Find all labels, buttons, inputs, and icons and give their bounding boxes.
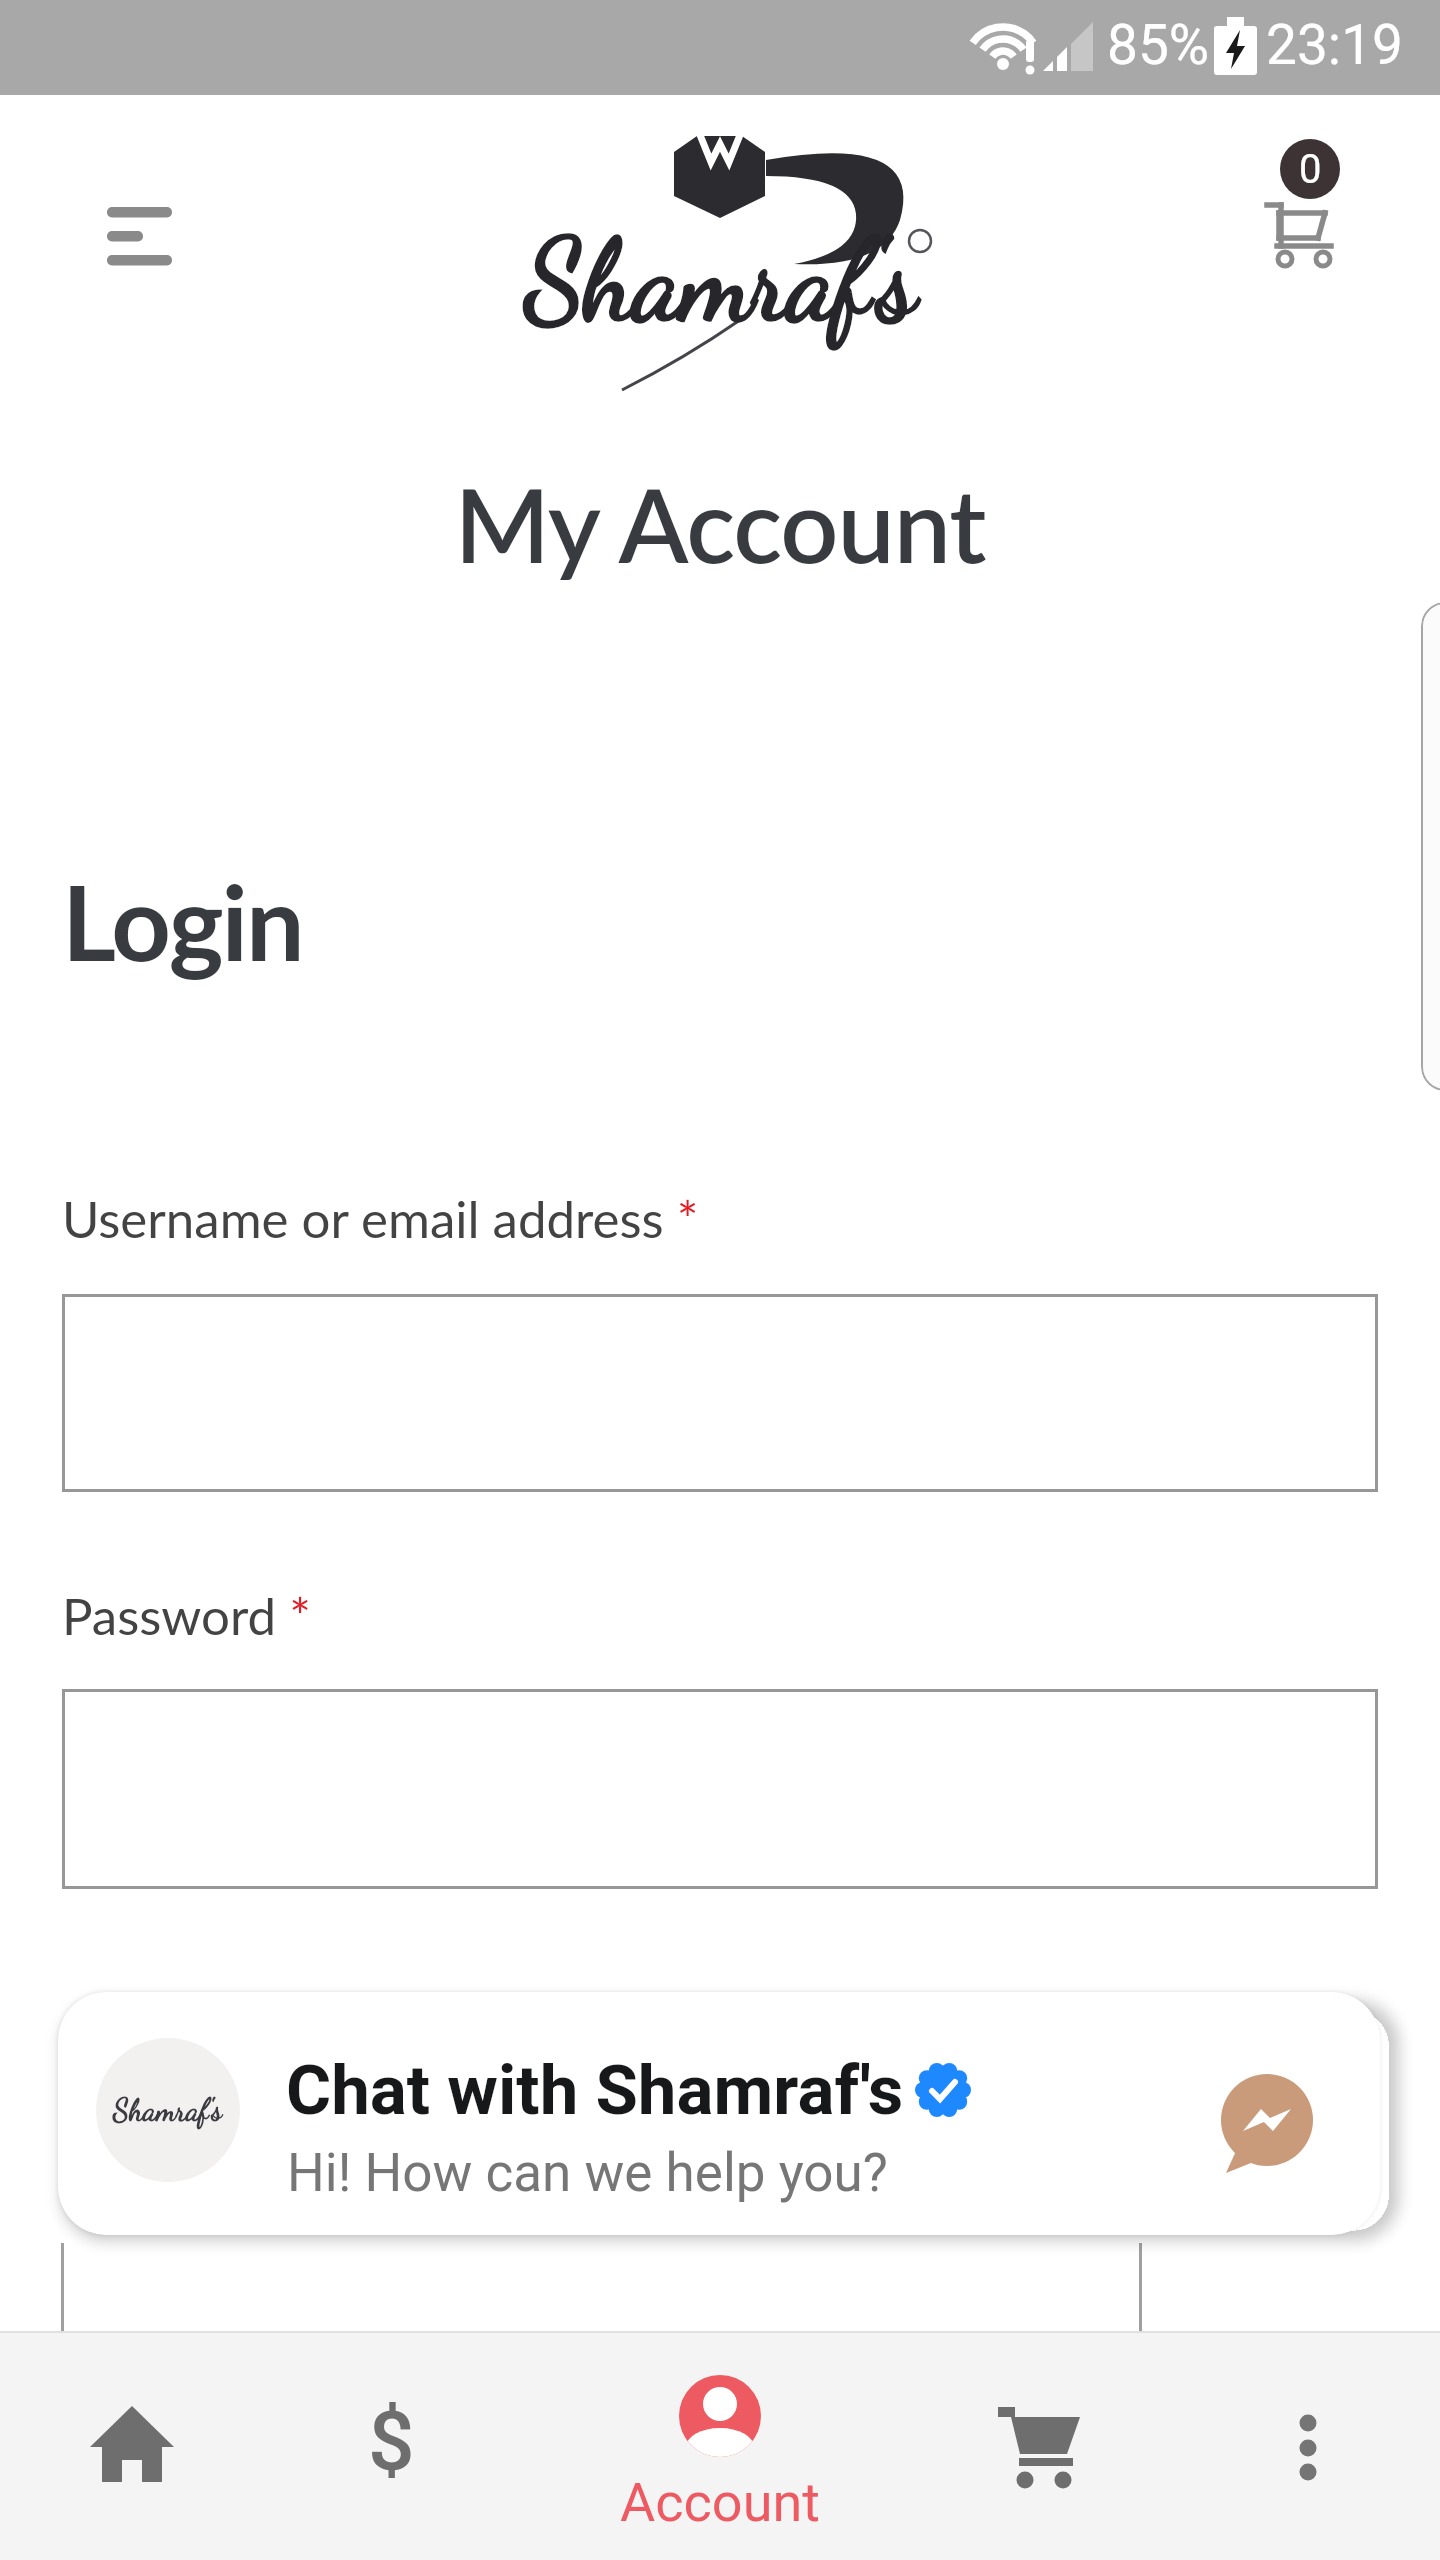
button[interactable]: Account: [610, 2366, 830, 2534]
button[interactable]: 0: [1250, 125, 1360, 280]
staticText: Password *: [62, 1585, 311, 1646]
staticText: 23:19: [1266, 13, 1403, 77]
button[interactable]: [62, 1294, 1378, 1492]
button[interactable]: Shamraf's: [58, 1992, 1380, 2235]
staticText: $: [368, 2394, 415, 2490]
button[interactable]: [975, 2386, 1105, 2510]
staticText: My Account: [0, 462, 1440, 584]
staticText: Login: [62, 858, 303, 983]
staticText: 85%: [1107, 13, 1210, 77]
button[interactable]: [72, 2386, 192, 2510]
button[interactable]: [62, 1689, 1378, 1889]
staticText: Chat with Shamraf's: [286, 2050, 904, 2131]
staticText: 0: [1299, 146, 1322, 193]
staticText: Shamraf's: [525, 214, 915, 348]
button[interactable]: $: [340, 2386, 450, 2510]
staticText: Hi! How can we help you?: [287, 2142, 888, 2204]
button[interactable]: Shamraf's: [515, 118, 945, 368]
button[interactable]: [1268, 2396, 1348, 2496]
button[interactable]: [90, 185, 190, 285]
staticText: Username or email address *: [62, 1188, 699, 1249]
staticText: Account: [610, 2471, 830, 2534]
staticText: Shamraf's: [113, 2092, 223, 2128]
